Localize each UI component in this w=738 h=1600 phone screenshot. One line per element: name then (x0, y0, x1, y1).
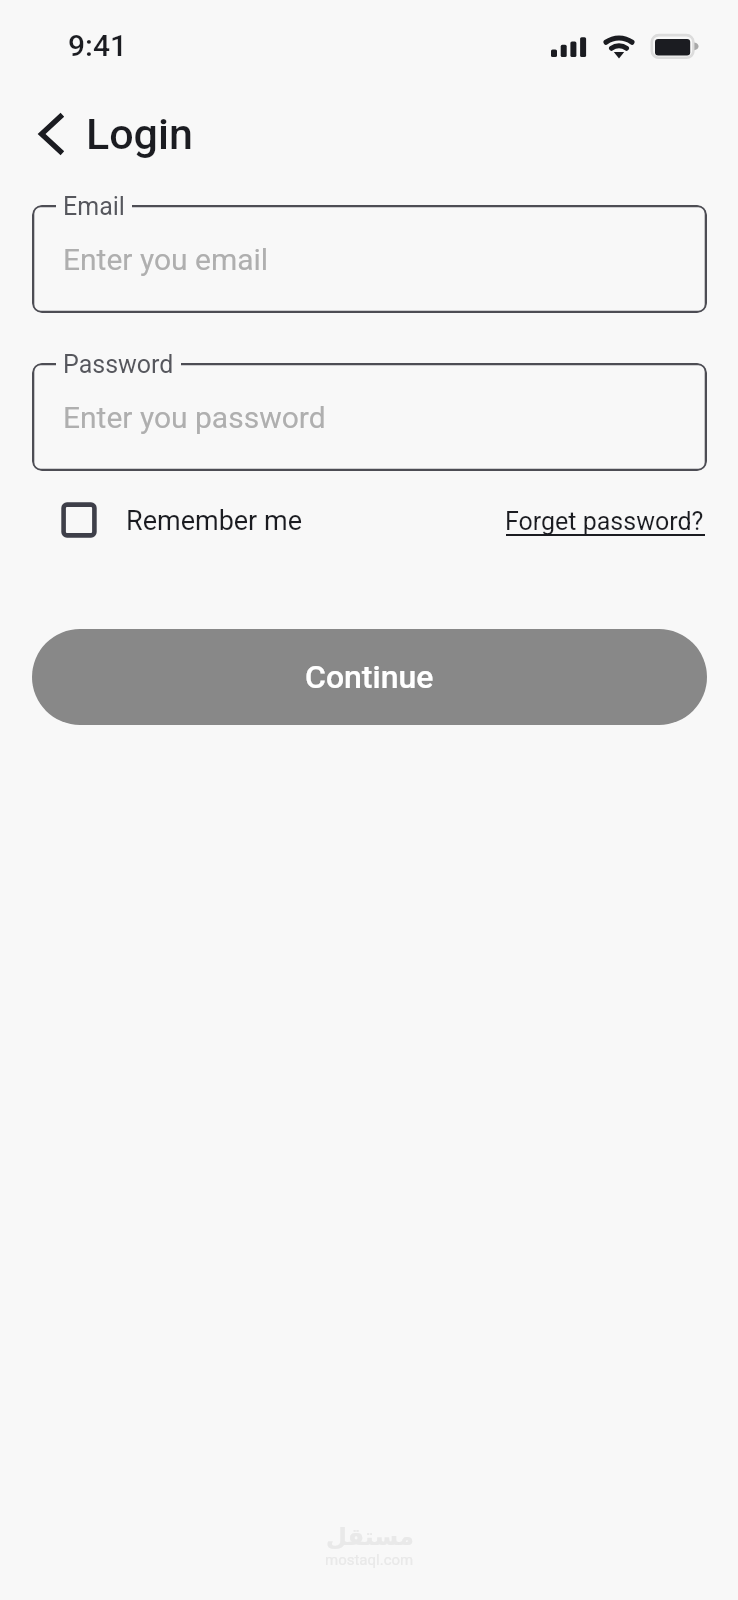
staticText: Enter you email (63, 242, 269, 277)
staticText: Continue (305, 658, 434, 696)
button[interactable]: Remember me (60, 501, 308, 539)
staticText: Password (63, 350, 174, 379)
button[interactable]: Enter you password (32, 363, 707, 471)
staticText: 9:41 (68, 28, 128, 63)
button[interactable]: Forget password? (505, 507, 704, 536)
staticText: mostaql.com (325, 1551, 414, 1569)
staticText: Enter you password (63, 400, 326, 435)
staticText: Login (86, 109, 193, 159)
button[interactable]: Continue (32, 629, 707, 725)
button[interactable]: Enter you email (32, 205, 707, 313)
staticText: Remember me (126, 505, 302, 537)
staticText: Email (63, 192, 125, 221)
staticText: مستقل (326, 1523, 414, 1551)
button[interactable]: Back (20, 103, 82, 165)
staticText: Forget password? (505, 507, 704, 536)
